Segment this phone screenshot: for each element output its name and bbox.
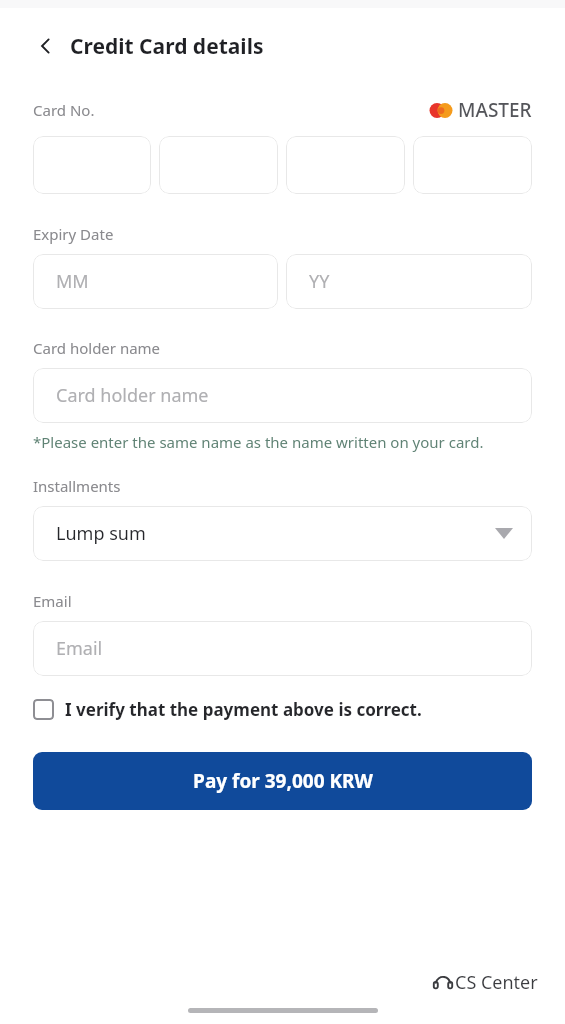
staticText: MASTER bbox=[458, 97, 532, 123]
button[interactable]: Card holder name bbox=[33, 368, 532, 423]
button[interactable] bbox=[159, 136, 278, 194]
staticText: Card No. bbox=[33, 100, 95, 120]
staticText: Email bbox=[56, 636, 103, 661]
button[interactable]: MM bbox=[33, 254, 278, 309]
staticText: CS Center bbox=[455, 970, 538, 995]
staticText: Lump sum bbox=[56, 521, 146, 546]
button[interactable] bbox=[413, 136, 532, 194]
button[interactable]: CS Center bbox=[433, 970, 538, 995]
button[interactable]: I verify that the payment above is corre… bbox=[33, 698, 532, 721]
staticText: Expiry Date bbox=[33, 224, 565, 244]
button[interactable]: Lump sum bbox=[33, 506, 532, 561]
staticText: YY bbox=[309, 269, 330, 294]
button[interactable]: Pay for 39,000 KRW bbox=[33, 752, 532, 810]
staticText: Card holder name bbox=[33, 338, 565, 358]
staticText: Email bbox=[33, 591, 565, 611]
staticText: Pay for 39,000 KRW bbox=[193, 768, 373, 794]
staticText: MM bbox=[56, 269, 89, 294]
staticText: *Please enter the same name as the name … bbox=[33, 432, 534, 452]
button[interactable]: Back bbox=[26, 26, 66, 66]
staticText: Credit Card details bbox=[70, 32, 264, 61]
button[interactable] bbox=[33, 136, 151, 194]
button[interactable]: YY bbox=[286, 254, 532, 309]
staticText: I verify that the payment above is corre… bbox=[65, 698, 422, 721]
staticText: Installments bbox=[33, 476, 565, 496]
button[interactable] bbox=[286, 136, 405, 194]
staticText: Card holder name bbox=[56, 383, 209, 408]
button[interactable]: Email bbox=[33, 621, 532, 676]
